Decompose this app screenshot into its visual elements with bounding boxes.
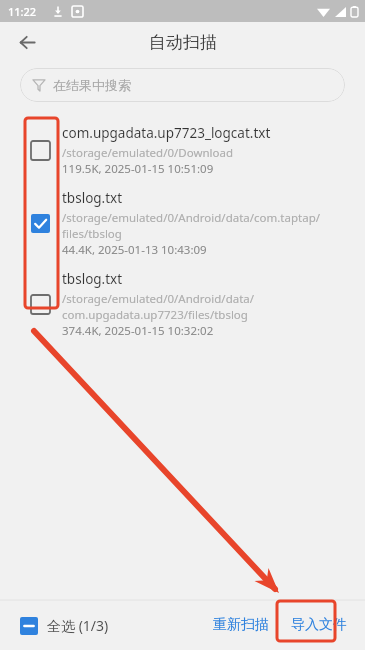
staticText: 在结果中搜索 <box>53 77 131 93</box>
staticText: tbslog.txt <box>62 189 123 207</box>
button[interactable]: 全选 (1/3) <box>20 616 109 635</box>
button[interactable]: Back <box>10 25 44 59</box>
staticText: 119.5K, 2025-01-15 10:51:09 <box>62 161 214 177</box>
staticText: 全选 (1/3) <box>47 616 109 635</box>
staticText: /storage/emulated/0/Android/data/com.tap… <box>62 210 320 226</box>
button[interactable]: 导入文件 <box>285 608 353 642</box>
button[interactable]: 重新扫描 <box>205 608 277 642</box>
button[interactable]: tbslog.txt <box>0 183 365 264</box>
staticText: files/tbslog <box>62 226 122 242</box>
staticText: 自动扫描 <box>149 32 217 53</box>
button[interactable]: tbslog.txt <box>0 264 365 345</box>
staticText: tbslog.txt <box>62 270 123 288</box>
staticText: com.upgadata.up7723_logcat.txt <box>62 124 271 142</box>
staticText: 重新扫描 <box>213 616 269 634</box>
button[interactable]: 在结果中搜索 <box>20 68 345 102</box>
staticText: com.upgadata.up7723/files/tbslog <box>62 307 248 323</box>
staticText: 11:22 <box>8 4 37 19</box>
staticText: 374.4K, 2025-01-15 10:32:02 <box>62 323 214 339</box>
staticText: 导入文件 <box>291 616 347 634</box>
button[interactable]: com.upgadata.up7723_logcat.txt <box>0 118 365 183</box>
staticText: /storage/emulated/0/Download <box>62 145 234 161</box>
staticText: 44.4K, 2025-01-13 10:43:09 <box>62 242 207 258</box>
staticText: /storage/emulated/0/Android/data/ <box>62 291 255 307</box>
